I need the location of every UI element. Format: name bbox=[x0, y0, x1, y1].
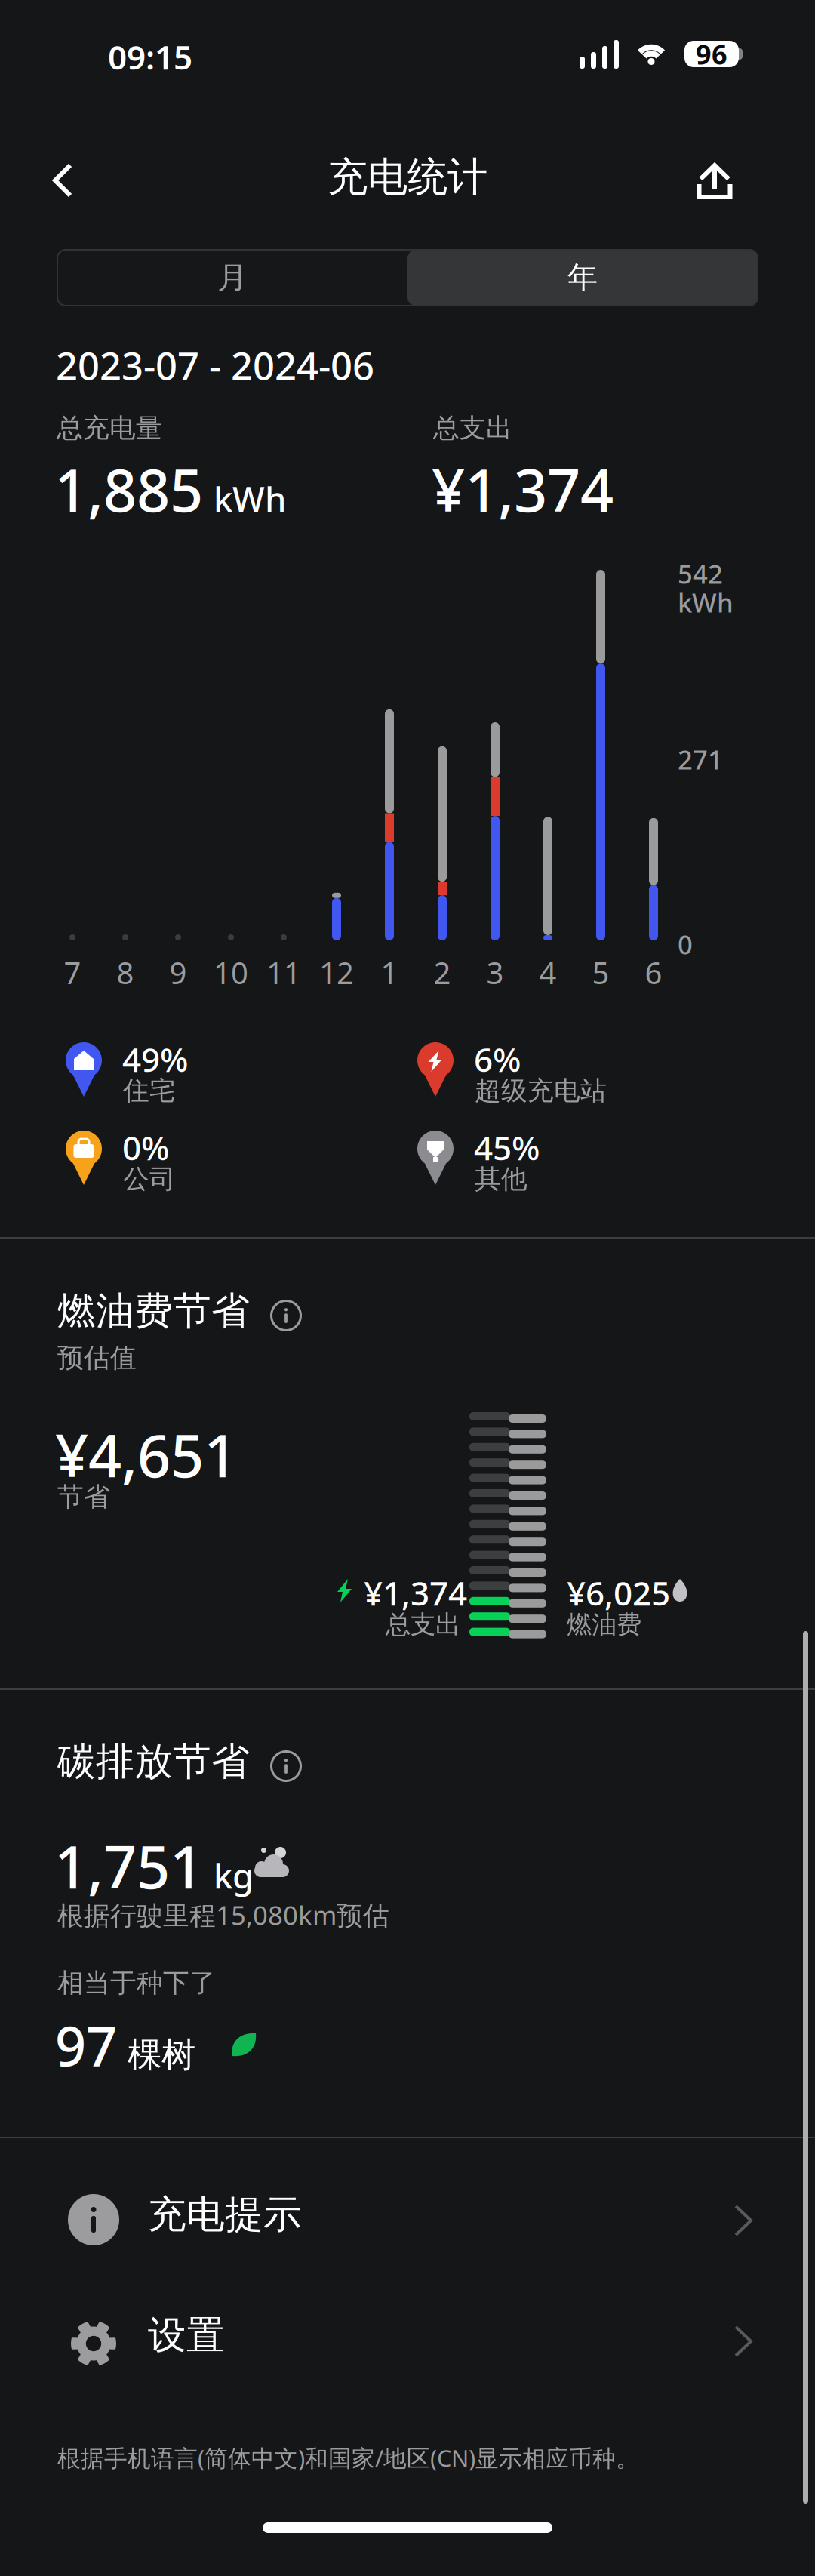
staticText: 超级充电站 bbox=[475, 1075, 607, 1107]
staticText: 09:15 bbox=[108, 35, 192, 79]
staticText: 充电提示 bbox=[148, 2191, 302, 2238]
staticText: 燃油费节省 bbox=[57, 1288, 250, 1335]
staticText: 年 bbox=[567, 259, 598, 296]
staticText: 1,885 bbox=[54, 451, 203, 528]
staticText: 5 bbox=[592, 953, 609, 993]
staticText: 49% bbox=[122, 1037, 188, 1081]
staticText: 2023-07 - 2024-06 bbox=[56, 340, 374, 390]
button[interactable]: 月 bbox=[57, 250, 407, 306]
staticText: 6% bbox=[474, 1037, 521, 1081]
staticText: 月 bbox=[217, 259, 248, 296]
staticText: 97 bbox=[55, 2009, 117, 2081]
staticText: 45% bbox=[474, 1125, 540, 1169]
staticText: 预估值 bbox=[57, 1342, 137, 1374]
button[interactable]: Back bbox=[23, 141, 102, 220]
staticText: 碳排放节省 bbox=[57, 1738, 250, 1785]
staticText: 节省 bbox=[57, 1481, 110, 1513]
staticText: ¥1,374 bbox=[364, 1571, 467, 1615]
staticText: 11 bbox=[266, 953, 301, 993]
staticText: 根据手机语言(简体中文)和国家/地区(CN)显示相应币种。 bbox=[57, 2442, 639, 2473]
staticText: 根据行驶里程15,080km预估 bbox=[57, 1897, 389, 1932]
staticText: kWh bbox=[214, 476, 286, 521]
button[interactable]: 年 bbox=[407, 250, 758, 306]
staticText: 6 bbox=[645, 953, 662, 993]
staticText: 96 bbox=[696, 36, 727, 72]
staticText: 1,751 bbox=[54, 1827, 203, 1905]
staticText: 7 bbox=[64, 953, 81, 993]
staticText: 8 bbox=[117, 953, 134, 993]
staticText: 1 bbox=[381, 953, 398, 993]
staticText: 9 bbox=[169, 953, 187, 993]
staticText: 相当于种下了 bbox=[57, 1967, 216, 1999]
staticText: ¥1,374 bbox=[432, 451, 614, 528]
staticText: 公司 bbox=[123, 1163, 176, 1195]
staticText: 设置 bbox=[148, 2312, 225, 2359]
staticText: 0 bbox=[678, 927, 693, 962]
staticText: 0% bbox=[122, 1125, 169, 1169]
staticText: ¥6,025 bbox=[567, 1571, 670, 1615]
staticText: 总充电量 bbox=[57, 412, 162, 444]
staticText: 总支出 bbox=[433, 412, 512, 444]
staticText: 充电统计 bbox=[328, 152, 487, 202]
staticText: 总支出 bbox=[386, 1609, 460, 1640]
staticText: 12 bbox=[319, 953, 354, 993]
staticText: 其他 bbox=[475, 1163, 527, 1195]
staticText: ¥4,651 bbox=[55, 1416, 237, 1493]
staticText: 10 bbox=[214, 953, 248, 993]
staticText: 271 bbox=[678, 742, 723, 777]
staticText: kg bbox=[214, 1853, 254, 1898]
staticText: 燃油费 bbox=[567, 1609, 641, 1640]
button[interactable]: Share bbox=[675, 142, 754, 220]
staticText: kWh bbox=[678, 585, 733, 620]
staticText: 4 bbox=[539, 953, 557, 993]
staticText: 住宅 bbox=[123, 1075, 176, 1107]
staticText: 2 bbox=[434, 953, 451, 993]
button[interactable]: 设置 bbox=[0, 0, 815, 2576]
staticText: 3 bbox=[486, 953, 504, 993]
staticText: 542 bbox=[678, 556, 723, 591]
staticText: 棵树 bbox=[128, 2034, 195, 2076]
button[interactable]: 充电提示 bbox=[0, 0, 815, 2576]
